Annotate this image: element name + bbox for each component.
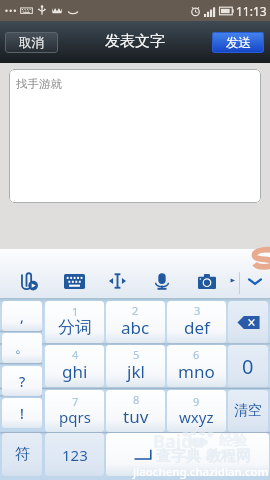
staticText: abc <box>121 316 150 339</box>
button[interactable]: Attach <box>16 269 42 295</box>
staticText: pqrs <box>59 407 91 427</box>
staticText: 清空 <box>234 402 262 420</box>
staticText: 8 <box>133 392 140 407</box>
button[interactable]: 9 <box>167 390 226 432</box>
button[interactable]: Delete <box>228 301 268 343</box>
staticText: wxyz <box>179 407 214 427</box>
staticText: 6 <box>193 347 200 362</box>
staticText: 经验 <box>219 432 247 450</box>
staticText: mno <box>178 360 215 383</box>
staticText: 0 <box>242 353 254 380</box>
staticText: 教程网 <box>206 447 251 466</box>
staticText: ghi <box>62 360 88 383</box>
staticText: 发送 <box>226 35 251 51</box>
button[interactable]: 5 <box>106 345 165 387</box>
staticText: 7 <box>72 394 79 409</box>
button[interactable]: ! <box>2 398 42 428</box>
staticText: 查字典 <box>156 447 201 466</box>
staticText: 。 <box>15 339 29 357</box>
staticText: jiaocheng.chazidian.com <box>133 464 269 480</box>
button[interactable]: 7 <box>45 390 104 432</box>
staticText: Baidu <box>153 429 205 454</box>
button[interactable]: 4 <box>45 345 104 387</box>
staticText: 找手游就 <box>16 77 62 91</box>
button[interactable]: 8 <box>106 390 165 432</box>
button[interactable]: 取消 <box>5 32 58 53</box>
staticText: ! <box>20 404 24 423</box>
button[interactable]: Voice input <box>150 269 174 294</box>
staticText: 9 <box>193 394 200 409</box>
button[interactable]: 123 <box>45 433 104 476</box>
button[interactable]: More <box>229 275 237 286</box>
button[interactable]: 2 <box>106 301 165 343</box>
staticText: 2 <box>132 303 139 318</box>
button[interactable]: 6 <box>167 345 226 387</box>
staticText: 符 <box>15 445 30 464</box>
staticText: 11:13 <box>236 3 267 19</box>
button[interactable]: 找手游就 <box>9 69 261 203</box>
button[interactable]: Hide keyboard <box>246 273 264 289</box>
button[interactable]: Keyboard <box>60 270 89 293</box>
button[interactable]: Camera <box>194 270 220 293</box>
staticText: def <box>184 316 210 339</box>
button[interactable]: 。 <box>2 333 42 363</box>
button[interactable]: 发送 <box>212 32 264 53</box>
button[interactable]: 3 <box>167 301 226 343</box>
staticText: 发表文字 <box>105 32 165 51</box>
staticText: 取消 <box>19 35 44 51</box>
button[interactable]: , <box>2 301 42 331</box>
staticText: 4 <box>72 347 79 362</box>
staticText: 123 <box>62 445 88 465</box>
staticText: 分词 <box>58 317 92 338</box>
staticText: , <box>20 307 24 326</box>
staticText: 5 <box>133 347 140 362</box>
button[interactable]: 符 <box>2 433 42 476</box>
button[interactable]: 0 <box>228 345 268 387</box>
button[interactable]: 1 <box>45 301 104 343</box>
button[interactable]: Move cursor <box>105 269 130 293</box>
button[interactable]: Enter <box>106 433 269 476</box>
staticText: 3 <box>194 303 201 318</box>
button[interactable]: ? <box>2 366 42 396</box>
staticText: ? <box>19 372 26 391</box>
staticText: jkl <box>127 360 145 383</box>
button[interactable]: 清空 <box>228 390 268 432</box>
staticText: 1 <box>72 304 79 319</box>
staticText: tuv <box>123 405 149 428</box>
